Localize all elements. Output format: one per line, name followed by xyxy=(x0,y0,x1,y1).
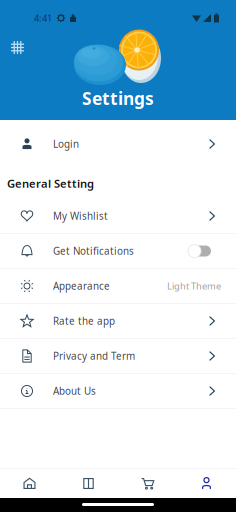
staticText: About Us xyxy=(53,384,96,398)
staticText: Light Theme xyxy=(167,280,221,292)
button[interactable]: Appearance xyxy=(0,269,236,303)
staticText: Get Notifications xyxy=(53,244,134,258)
button[interactable]: Login xyxy=(0,120,236,168)
button[interactable]: Get Notifications xyxy=(0,234,236,268)
button[interactable]: Home xyxy=(0,469,59,498)
button[interactable]: Catalog xyxy=(59,469,118,498)
staticText: Privacy and Term xyxy=(53,349,135,363)
staticText: Appearance xyxy=(53,279,110,293)
button[interactable]: Privacy and Term xyxy=(0,339,236,373)
staticText: 4:41 xyxy=(34,12,52,24)
staticText: General Setting xyxy=(7,176,94,191)
button[interactable]: Cart xyxy=(118,469,177,498)
button[interactable]: Account xyxy=(177,469,236,498)
staticText: Settings xyxy=(82,86,154,110)
button[interactable]: About Us xyxy=(0,374,236,408)
staticText: My Wishlist xyxy=(53,209,108,223)
button[interactable]: My Wishlist xyxy=(0,199,236,233)
staticText: Login xyxy=(53,137,79,151)
staticText: Rate the app xyxy=(53,314,115,328)
button[interactable]: Rate the app xyxy=(0,304,236,338)
